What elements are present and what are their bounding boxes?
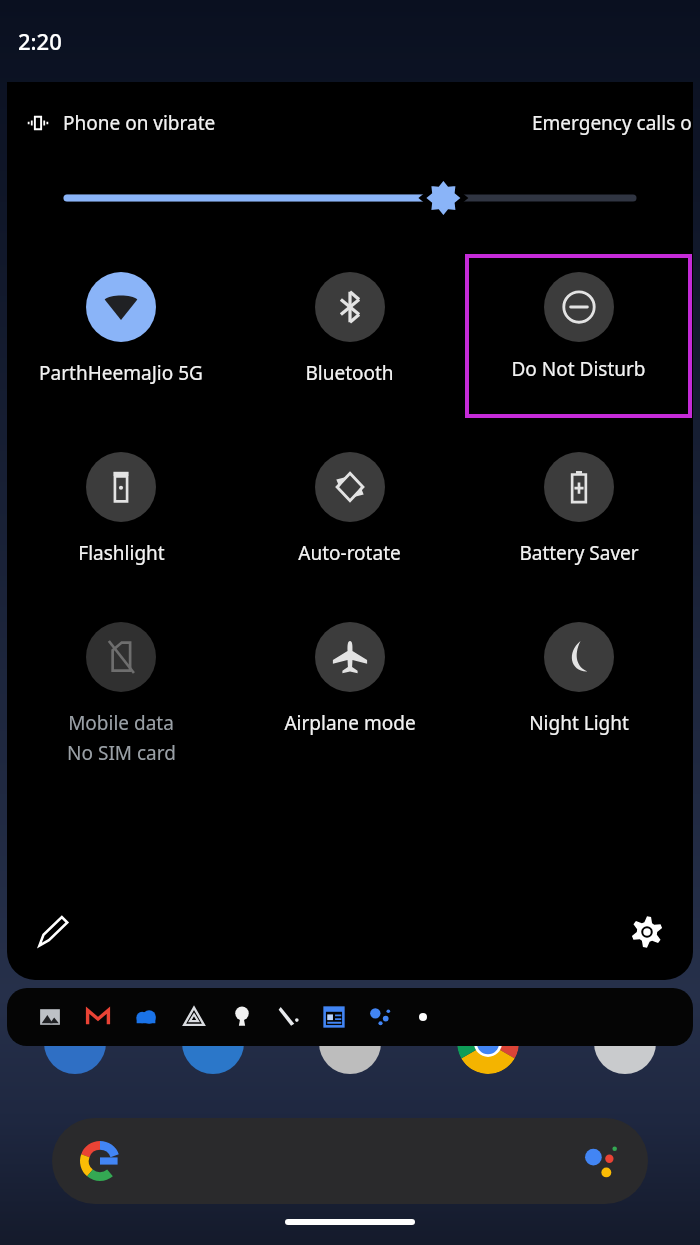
button[interactable] [7, 988, 693, 1046]
button[interactable]: Emergency calls on [532, 110, 693, 136]
button[interactable] [594, 1012, 656, 1074]
button[interactable]: Phone on vibrate [21, 106, 220, 140]
staticText: Airplane mode [284, 710, 416, 736]
staticText: Auto-rotate [298, 540, 401, 566]
staticText: 2:20 [18, 26, 62, 56]
button[interactable]: Settings [621, 906, 673, 958]
staticText: Bluetooth [305, 360, 394, 386]
button[interactable]: Airplane mode [235, 596, 464, 766]
staticText: Phone on vibrate [63, 110, 216, 136]
button[interactable]: Auto-rotate [235, 426, 464, 596]
staticText: Flashlight [78, 540, 165, 566]
button[interactable] [44, 1012, 106, 1074]
button[interactable] [319, 1012, 381, 1074]
button[interactable]: Do Not Disturb [467, 256, 690, 416]
staticText: Battery Saver [519, 540, 639, 566]
staticText: No SIM card [67, 740, 176, 766]
button[interactable]: Edit tiles [27, 906, 79, 958]
button[interactable]: Battery Saver [464, 426, 693, 596]
staticText: Night Light [529, 710, 629, 736]
button[interactable]: Flashlight [7, 426, 235, 596]
button[interactable] [52, 1118, 648, 1204]
button[interactable] [182, 1012, 244, 1074]
button[interactable]: Night Light [464, 596, 693, 766]
button[interactable] [457, 1012, 519, 1074]
button[interactable]: Bluetooth [235, 246, 464, 426]
staticText: ParthHeemaJio 5G [39, 360, 203, 386]
staticText: Do Not Disturb [511, 356, 646, 382]
button[interactable]: Mobile data [7, 596, 235, 766]
button[interactable] [67, 164, 633, 232]
staticText: Mobile data [68, 710, 174, 736]
button[interactable]: ParthHeemaJio 5G [7, 246, 235, 426]
